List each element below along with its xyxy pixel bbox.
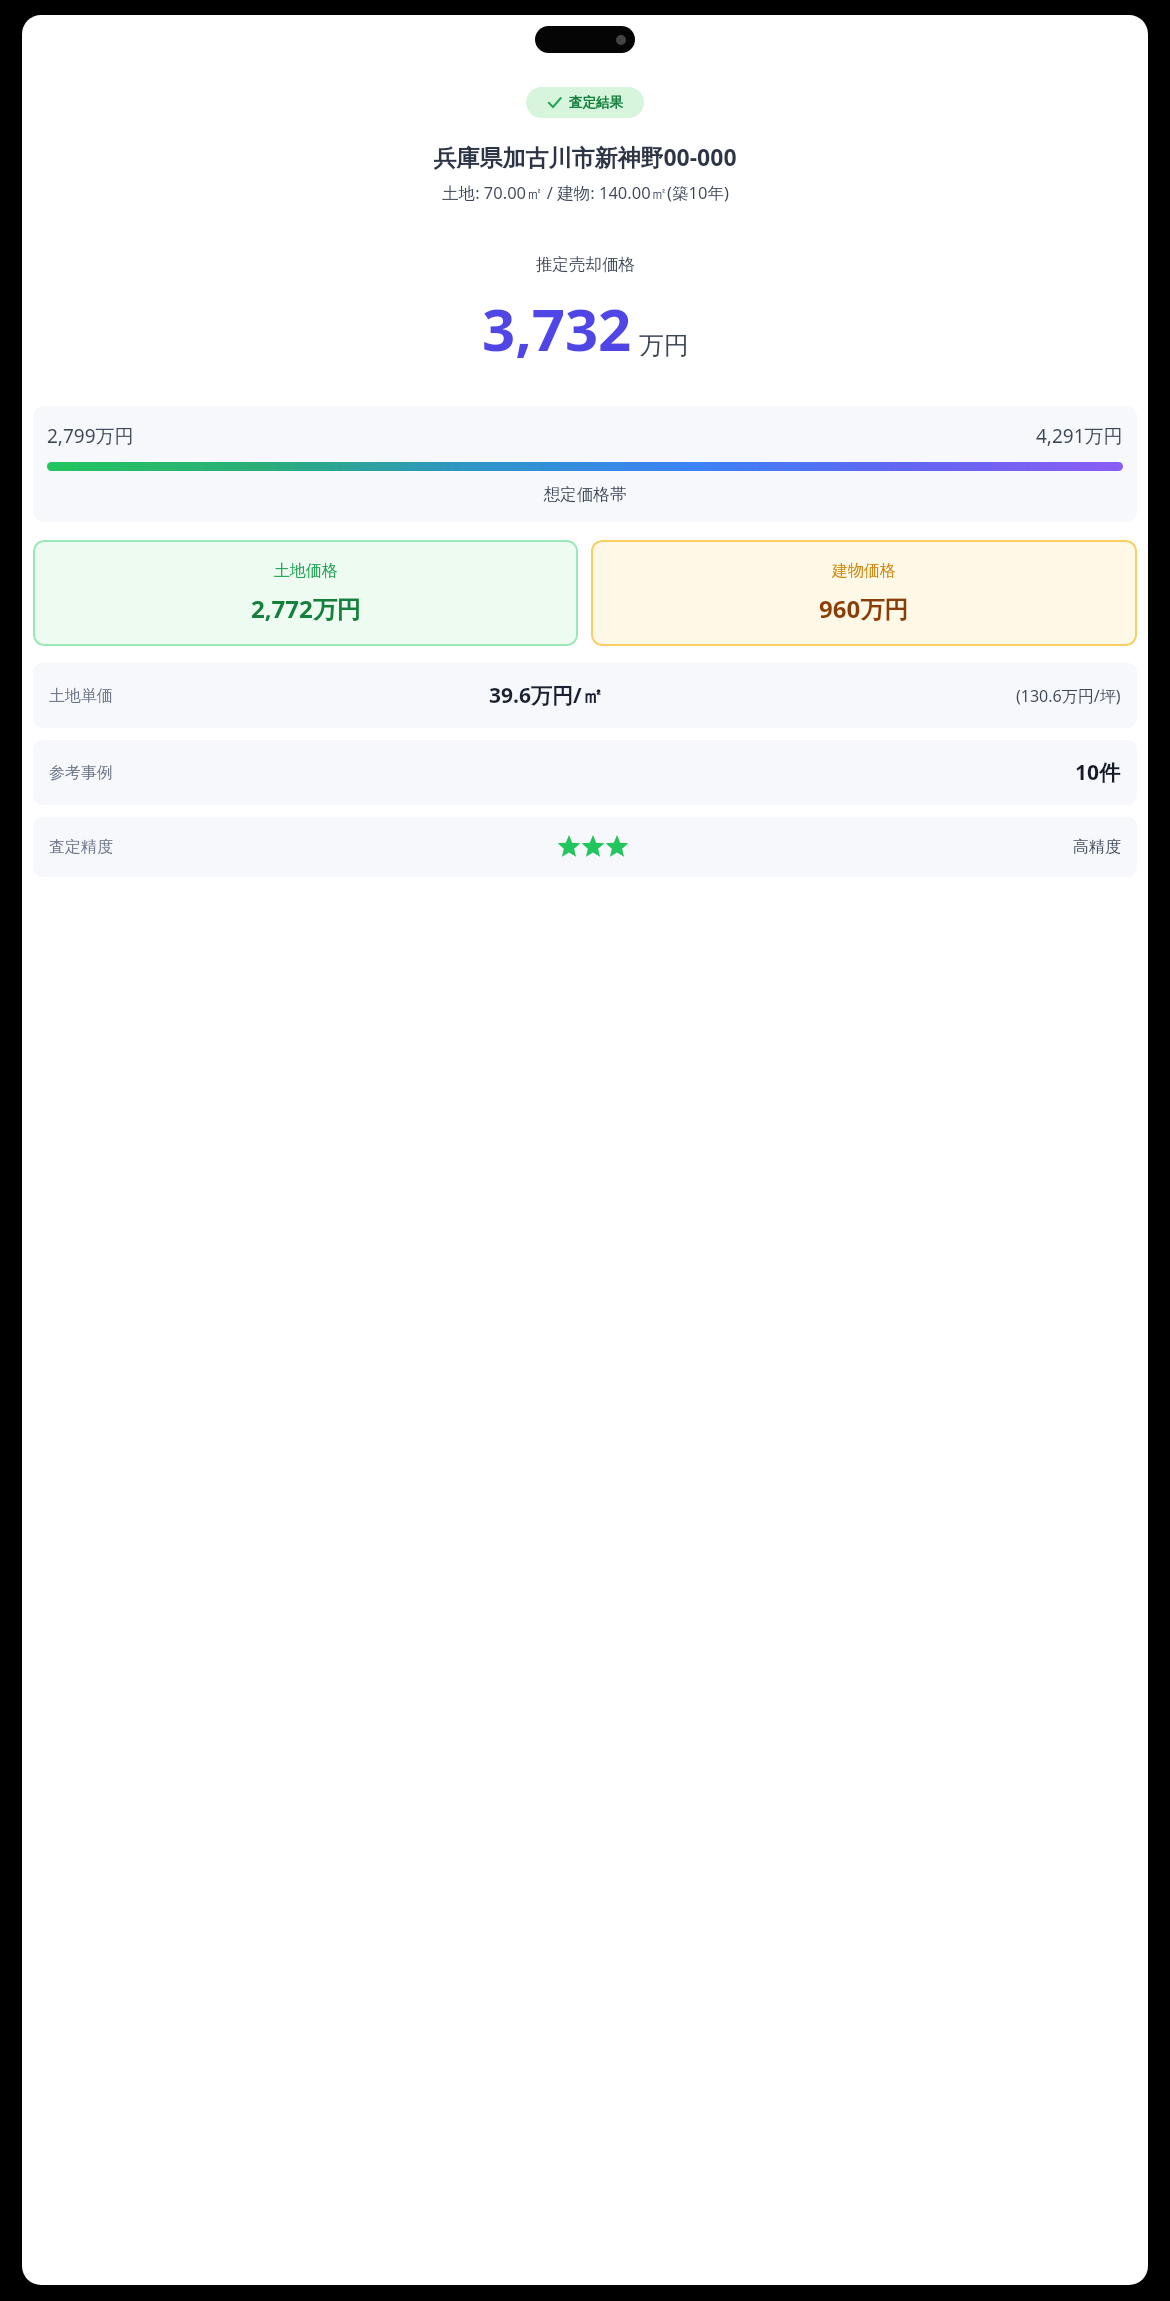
button[interactable]: 査定結果	[526, 87, 644, 118]
staticText: 10件	[1075, 758, 1121, 787]
staticText: 39.6万円/㎡	[489, 681, 603, 710]
staticText: 高精度	[1073, 837, 1121, 857]
button[interactable]: 査定精度	[33, 817, 1137, 877]
staticText: 建物価格	[832, 561, 896, 581]
staticText: 2,772万円	[251, 592, 361, 625]
staticText: 土地: 70.00㎡ / 建物: 140.00㎡(築10年)	[442, 181, 729, 204]
button[interactable]: 土地価格	[33, 540, 578, 646]
staticText: 3,732	[482, 289, 632, 368]
button[interactable]: 参考事例	[33, 740, 1137, 805]
staticText: 推定売却価格	[536, 254, 635, 275]
staticText: 土地価格	[274, 561, 338, 581]
button[interactable]: 2,799万円	[33, 406, 1137, 522]
staticText: 万円	[639, 330, 689, 361]
staticText: 査定精度	[49, 837, 113, 857]
staticText: 想定価格帯	[47, 484, 1123, 505]
button[interactable]: 土地単価	[33, 663, 1137, 728]
staticText: (130.6万円/坪)	[1016, 685, 1121, 707]
staticText: 査定結果	[569, 94, 623, 111]
button[interactable]: 建物価格	[591, 540, 1137, 646]
staticText: 兵庫県加古川市新神野00-000	[433, 141, 737, 172]
staticText: 土地単価	[49, 686, 113, 706]
staticText: 960万円	[819, 592, 909, 625]
staticText: 2,799万円	[47, 423, 134, 449]
staticText: 参考事例	[49, 763, 113, 783]
staticText: 4,291万円	[1036, 423, 1123, 449]
other: 3 star accuracy	[557, 835, 629, 859]
